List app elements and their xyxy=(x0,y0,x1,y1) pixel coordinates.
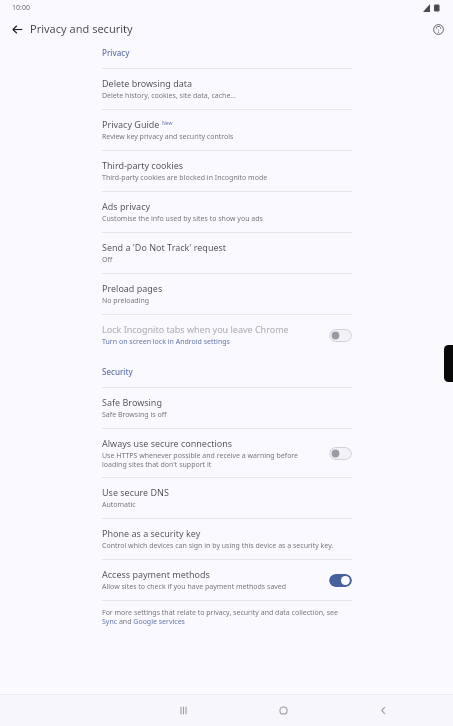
staticText: Safe Browsing is off xyxy=(102,410,167,420)
button[interactable]: Recents xyxy=(166,695,200,726)
staticText: Review key privacy and security controls xyxy=(102,132,234,142)
button[interactable]: Help xyxy=(427,18,449,40)
staticText: Preload pages xyxy=(102,282,163,294)
button[interactable]: Send a 'Do Not Track' request xyxy=(0,233,453,273)
staticText: Ads privacy xyxy=(102,200,151,212)
button[interactable]: Preload pages xyxy=(0,274,453,314)
button[interactable]: Use secure DNS xyxy=(0,478,453,518)
staticText: Send a 'Do Not Track' request xyxy=(102,241,227,253)
button[interactable]: Third-party cookies xyxy=(0,151,453,191)
staticText: Allow sites to check if you have payment… xyxy=(102,582,287,592)
button[interactable]: Ads privacy xyxy=(0,192,453,232)
staticText: Third-party cookies are blocked in Incog… xyxy=(102,173,268,183)
staticText: Privacy and security xyxy=(30,21,133,36)
button[interactable]: Privacy Guide New xyxy=(0,110,453,150)
staticText: For more settings that relate to privacy… xyxy=(102,608,352,626)
staticText: Always use secure connections xyxy=(102,437,233,449)
staticText: 10:00 xyxy=(12,3,30,13)
staticText: Off xyxy=(102,255,113,265)
staticText: Customise the info used by sites to show… xyxy=(102,214,263,224)
button[interactable]: Lock Incognito tabs when you leave Chrom… xyxy=(329,329,352,342)
staticText: Privacy xyxy=(102,47,130,58)
staticText: Safe Browsing xyxy=(102,396,162,408)
staticText: Automatic xyxy=(102,500,136,510)
button[interactable]: Always use secure connections xyxy=(329,447,352,460)
staticText: Phone as a security key xyxy=(102,527,201,539)
staticText: Third-party cookies xyxy=(102,159,184,171)
button[interactable]: Back xyxy=(6,18,28,40)
button[interactable]: Access payment methods xyxy=(329,574,352,587)
staticText: Use secure DNS xyxy=(102,486,169,498)
button[interactable]: Access payment methods xyxy=(0,560,453,600)
staticText: Privacy Guide New xyxy=(102,118,173,130)
staticText: Security xyxy=(102,366,133,377)
staticText: Lock Incognito tabs when you leave Chrom… xyxy=(102,323,289,335)
staticText: Access payment methods xyxy=(102,568,210,580)
button[interactable]: Phone as a security key xyxy=(0,519,453,559)
button[interactable]: Safe Browsing xyxy=(0,388,453,428)
staticText: Turn on screen lock in Android settings xyxy=(102,337,230,347)
button[interactable]: Back xyxy=(366,695,400,726)
staticText: Delete browsing data xyxy=(102,77,193,89)
staticText: No preloading xyxy=(102,296,150,306)
staticText: Delete history, cookies, site data, cach… xyxy=(102,91,236,101)
button[interactable]: Delete browsing data xyxy=(0,69,453,109)
staticText: Control which devices can sign in by usi… xyxy=(102,541,334,551)
button[interactable]: Home xyxy=(266,695,300,726)
staticText: Use HTTPS whenever possible and receive … xyxy=(102,451,319,469)
button[interactable]: Always use secure connections xyxy=(0,429,453,477)
button[interactable]: Lock Incognito tabs when you leave Chrom… xyxy=(0,315,453,355)
